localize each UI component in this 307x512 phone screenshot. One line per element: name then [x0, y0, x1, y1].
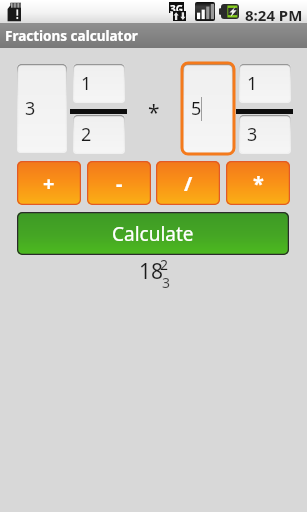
- button[interactable]: 5: [183, 64, 233, 153]
- button[interactable]: 1: [73, 64, 125, 103]
- button[interactable]: 3: [17, 64, 67, 153]
- staticText: *: [253, 170, 264, 197]
- staticText: 5: [191, 96, 202, 121]
- staticText: 3: [162, 273, 171, 292]
- button[interactable]: 2: [73, 115, 125, 154]
- staticText: -: [116, 170, 123, 197]
- button[interactable]: -: [87, 161, 151, 205]
- staticText: Fractions calculator: [5, 27, 138, 45]
- button[interactable]: Calculate: [17, 212, 289, 255]
- staticText: 2: [81, 122, 92, 147]
- staticText: 3: [25, 96, 36, 121]
- button[interactable]: 1: [239, 64, 291, 103]
- staticText: 18: [139, 257, 164, 286]
- staticText: 1: [247, 71, 258, 96]
- staticText: 8:24 PM: [245, 5, 303, 25]
- staticText: 3G: [170, 2, 183, 13]
- button[interactable]: /: [156, 161, 220, 205]
- staticText: Calculate: [112, 221, 194, 247]
- button[interactable]: 3: [239, 115, 291, 154]
- staticText: 1: [81, 71, 92, 96]
- staticText: *: [148, 98, 160, 127]
- button[interactable]: +: [17, 161, 81, 205]
- staticText: 3: [247, 122, 258, 147]
- button[interactable]: *: [226, 161, 290, 205]
- staticText: 2: [160, 255, 169, 274]
- staticText: +: [43, 170, 55, 197]
- staticText: /: [184, 170, 193, 197]
